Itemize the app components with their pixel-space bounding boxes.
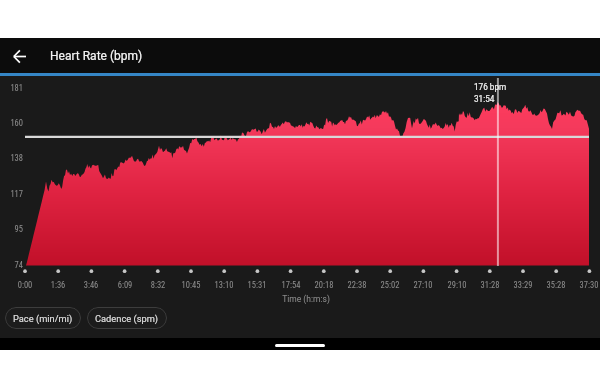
staticText: 181 bbox=[0, 83, 23, 93]
staticText: 37:30 bbox=[573, 280, 600, 290]
staticText: 31:28 bbox=[474, 280, 506, 290]
button[interactable]: Pace (min/mi) bbox=[5, 307, 81, 329]
staticText: 25:02 bbox=[374, 280, 406, 290]
staticText: Heart Rate (bpm) bbox=[50, 49, 143, 63]
staticText: 35:28 bbox=[540, 280, 572, 290]
button[interactable]: Cadence (spm) bbox=[87, 307, 167, 329]
staticText: 138 bbox=[0, 153, 23, 163]
staticText: 31:54 bbox=[474, 94, 495, 104]
staticText: Pace (min/mi) bbox=[13, 313, 73, 324]
staticText: 3:46 bbox=[75, 280, 107, 290]
staticText: 74 bbox=[0, 260, 23, 270]
staticText: 95 bbox=[0, 224, 23, 234]
staticText: 29:10 bbox=[441, 280, 473, 290]
staticText: Cadence (spm) bbox=[95, 313, 159, 324]
staticText: 27:10 bbox=[407, 280, 439, 290]
staticText: 10:45 bbox=[175, 280, 207, 290]
staticText: 33:29 bbox=[507, 280, 539, 290]
staticText: 8:32 bbox=[142, 280, 174, 290]
staticText: 1:36 bbox=[42, 280, 74, 290]
staticText: 13:10 bbox=[208, 280, 240, 290]
staticText: 17:54 bbox=[275, 280, 307, 290]
staticText: 117 bbox=[0, 189, 23, 199]
staticText: 160 bbox=[0, 118, 23, 128]
staticText: 22:38 bbox=[341, 280, 373, 290]
staticText: 0:00 bbox=[9, 280, 41, 290]
staticText: 20:18 bbox=[308, 280, 340, 290]
staticText: 6:09 bbox=[109, 280, 141, 290]
staticText: Time (h:m:s) bbox=[276, 294, 336, 304]
staticText: 176 bpm bbox=[474, 82, 507, 92]
staticText: 15:31 bbox=[241, 280, 273, 290]
button[interactable]: Navigate up bbox=[6, 43, 32, 69]
